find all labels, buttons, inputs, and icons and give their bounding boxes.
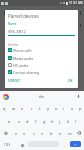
staticText: n: [59, 131, 62, 136]
button[interactable]: y: [44, 102, 52, 115]
staticText: .: [64, 143, 66, 148]
staticText: Use for: [8, 43, 19, 47]
staticText: h: [51, 119, 54, 124]
button[interactable]: OK: [67, 78, 74, 84]
staticText: 11:51 AM: [69, 1, 83, 5]
button[interactable]: w: [9, 102, 18, 115]
staticText: x: [23, 131, 26, 136]
button[interactable]: r: [27, 102, 36, 115]
staticText: e: [21, 106, 24, 111]
staticText: c: [33, 131, 35, 136]
button[interactable]: Enter: [70, 141, 81, 147]
button[interactable]: FORGET: [7, 78, 22, 84]
button[interactable]: p: [76, 102, 84, 115]
button[interactable]: g: [40, 115, 48, 127]
button[interactable]: i: [60, 102, 68, 115]
staticText: p: [79, 106, 82, 111]
button[interactable]: f: [32, 115, 40, 127]
staticText: m: [68, 131, 72, 136]
staticText: k: [67, 119, 70, 124]
staticText: y: [47, 106, 50, 111]
staticText: t: [39, 106, 41, 111]
other: Voice input: [76, 94, 81, 99]
staticText: d: [26, 119, 29, 124]
button[interactable]: v: [38, 127, 47, 139]
staticText: SRS-XB12: [8, 29, 26, 34]
staticText: Media audio: [13, 56, 34, 61]
staticText: Phone calls: [13, 48, 32, 53]
staticText: a: [8, 119, 11, 124]
staticText: o: [71, 106, 74, 111]
button[interactable]: x: [20, 127, 29, 139]
staticText: Paired devices: [8, 13, 39, 19]
staticText: HD audio: [13, 63, 29, 68]
button[interactable]: e: [18, 102, 27, 115]
staticText: j: [59, 119, 61, 124]
button[interactable]: j: [56, 115, 64, 127]
button[interactable]: a: [5, 115, 14, 127]
staticText: FORGET: [8, 79, 21, 83]
button[interactable]: s: [14, 115, 23, 127]
button[interactable]: ?123: [1, 139, 13, 150]
staticText: ?123: [4, 143, 11, 147]
button[interactable]: q: [0, 102, 9, 115]
staticText: OK: [68, 79, 73, 83]
staticText: s: [18, 119, 20, 124]
other: Google: [3, 94, 9, 100]
staticText: w: [12, 106, 16, 111]
button[interactable]: t: [36, 102, 44, 115]
button[interactable]: c: [29, 127, 38, 139]
staticText: r: [31, 106, 33, 111]
staticText: g: [43, 119, 46, 124]
staticText: b: [50, 131, 53, 136]
button[interactable]: h: [48, 115, 56, 127]
button[interactable]: o: [68, 102, 76, 115]
button[interactable]: Shift: [0, 127, 11, 139]
button[interactable]: b: [47, 127, 56, 139]
staticText: l: [75, 119, 77, 124]
button[interactable]: m: [65, 127, 74, 139]
button[interactable]: l: [72, 115, 80, 127]
button[interactable]: z: [11, 127, 20, 139]
button[interactable]: Phone calls: [8, 47, 78, 53]
button[interactable]: Backspace: [74, 127, 84, 139]
button[interactable]: d: [23, 115, 32, 127]
staticText: q: [3, 106, 6, 111]
staticText: u: [55, 106, 58, 111]
staticText: f: [35, 119, 37, 124]
button[interactable]: u: [52, 102, 60, 115]
button[interactable]: Contact sharing: [8, 69, 78, 75]
button[interactable]: n: [56, 127, 65, 139]
staticText: v: [41, 131, 44, 136]
staticText: the: [39, 94, 45, 99]
button[interactable]: Media audio: [8, 55, 78, 61]
staticText: Contact sharing: [13, 70, 40, 75]
button[interactable]: HD audio: [8, 62, 78, 68]
staticText: i: [63, 106, 65, 111]
button[interactable]: k: [64, 115, 72, 127]
staticText: z: [15, 131, 17, 136]
staticText: Name: [8, 22, 17, 26]
button[interactable]: Emoji: [17, 139, 27, 150]
